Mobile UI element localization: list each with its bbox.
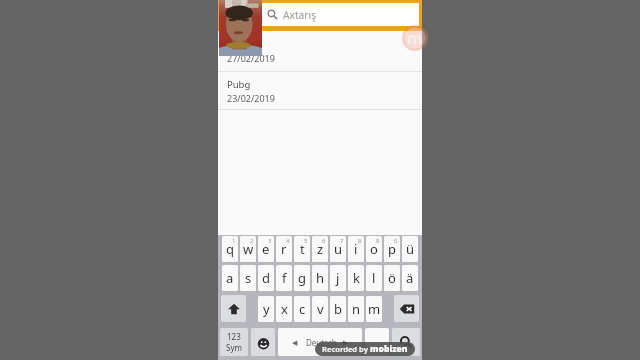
button[interactable]: Emoji	[251, 328, 275, 356]
button[interactable]: g	[294, 265, 310, 291]
staticText: mobizen	[370, 343, 408, 355]
button[interactable]: ä	[402, 265, 418, 291]
staticText: t	[300, 240, 305, 258]
staticText: l	[372, 269, 376, 287]
button[interactable]: r	[276, 236, 292, 262]
button[interactable]: o	[366, 236, 382, 262]
button[interactable]: Pubg	[218, 72, 422, 109]
staticText: Axtarış	[283, 8, 317, 22]
staticText: 9	[376, 237, 380, 245]
staticText: m	[368, 300, 381, 318]
button[interactable]: .	[365, 328, 389, 356]
staticText: f	[282, 269, 287, 287]
staticText: ö	[388, 269, 396, 287]
staticText: b	[334, 300, 342, 318]
button[interactable]: e	[258, 236, 274, 262]
staticText: u	[334, 240, 343, 258]
staticText: i	[354, 240, 358, 258]
staticText: g	[298, 269, 306, 287]
button[interactable]: s	[240, 265, 256, 291]
staticText: o	[370, 240, 378, 258]
staticText: x	[281, 300, 288, 318]
staticText: 27/02/2019	[227, 52, 275, 64]
staticText: k	[353, 269, 360, 287]
staticText: 3	[268, 237, 272, 245]
button[interactable]: c	[294, 296, 310, 322]
button[interactable]: b	[330, 296, 346, 322]
staticText: ä	[406, 269, 414, 287]
staticText: .	[376, 335, 379, 350]
staticText: 23/02/2019	[227, 92, 275, 104]
button[interactable]: f	[276, 265, 292, 291]
staticText: q	[226, 240, 234, 258]
button[interactable]: l	[366, 265, 382, 291]
button[interactable]: h	[312, 265, 328, 291]
staticText: 5	[304, 237, 308, 245]
button[interactable]: i	[348, 236, 364, 262]
staticText: Sym	[226, 342, 242, 353]
staticText: 0	[394, 237, 398, 245]
staticText: ▶	[343, 339, 349, 347]
button[interactable]: Recorded by	[315, 342, 415, 356]
staticText: r	[281, 240, 287, 258]
button[interactable]: x	[276, 296, 292, 322]
staticText: j	[336, 269, 340, 287]
staticText: w	[243, 240, 254, 258]
staticText: m	[407, 27, 423, 49]
button[interactable]: v	[312, 296, 328, 322]
button[interactable]: z	[312, 236, 328, 262]
staticText: 4	[286, 237, 290, 245]
staticText: Pubg	[227, 78, 251, 91]
button[interactable]: ◀	[278, 328, 362, 356]
staticText: c	[299, 300, 306, 318]
staticText: p	[388, 240, 396, 258]
staticText: s	[245, 269, 252, 287]
button[interactable]: u	[330, 236, 346, 262]
button[interactable]: Search	[392, 328, 420, 356]
staticText: d	[262, 269, 270, 287]
staticText: Recorded by	[322, 344, 370, 354]
staticText: y	[263, 300, 270, 318]
button[interactable]: Shift	[221, 295, 246, 322]
button[interactable]: w	[240, 236, 256, 262]
staticText: 8	[358, 237, 362, 245]
staticText: z	[317, 240, 324, 258]
staticText: v	[317, 300, 324, 318]
staticText: 2	[250, 237, 254, 245]
staticText: ü	[406, 240, 415, 258]
staticText: 1	[232, 237, 236, 245]
button[interactable]: q	[222, 236, 238, 262]
button[interactable]: ü	[402, 236, 418, 262]
staticText: a	[226, 269, 234, 287]
button[interactable]: n	[348, 296, 364, 322]
staticText: n	[352, 300, 361, 318]
button[interactable]: ö	[384, 265, 400, 291]
button[interactable]: Axtarış	[261, 3, 419, 26]
button[interactable]: m	[366, 296, 382, 322]
staticText: 123	[227, 331, 241, 342]
staticText: ◀	[292, 339, 298, 347]
staticText: 7	[340, 237, 344, 245]
button[interactable]: t	[294, 236, 310, 262]
staticText: Deutsch	[306, 337, 337, 348]
staticText: h	[316, 269, 325, 287]
staticText: e	[262, 240, 270, 258]
button[interactable]: k	[348, 265, 364, 291]
staticText: 6	[322, 237, 326, 245]
button[interactable]: a	[222, 265, 238, 291]
button[interactable]: 123	[220, 328, 248, 356]
button[interactable]: y	[258, 296, 274, 322]
button[interactable]: d	[258, 265, 274, 291]
button[interactable]: j	[330, 265, 346, 291]
button[interactable]: 27/02/2019	[218, 31, 422, 71]
button[interactable]: p	[384, 236, 400, 262]
button[interactable]: Backspace	[394, 295, 419, 322]
